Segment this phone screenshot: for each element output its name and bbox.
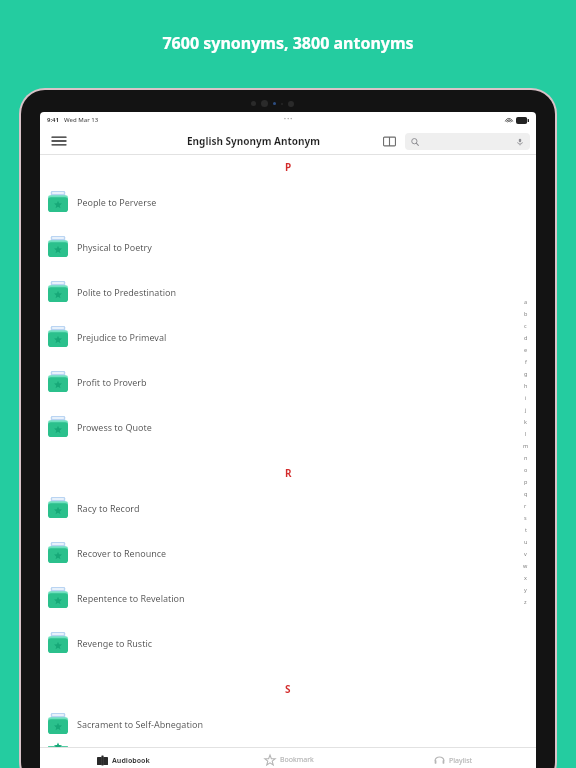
staticText: w <box>523 562 528 569</box>
button[interactable]: w <box>521 559 530 571</box>
staticText: Revenge to Rustic <box>77 637 153 649</box>
staticText: s <box>524 514 527 521</box>
staticText: j <box>525 406 527 413</box>
button[interactable]: d <box>521 331 530 343</box>
button[interactable]: Prejudice to Primeval <box>40 314 536 359</box>
staticText: R <box>285 466 292 480</box>
staticText: y <box>524 586 527 593</box>
staticText: Wed Mar 13 <box>64 116 99 124</box>
button[interactable]: People to Perverse <box>40 179 536 224</box>
staticText: People to Perverse <box>77 196 157 208</box>
button[interactable]: j <box>521 403 530 415</box>
staticText: h <box>524 382 528 389</box>
button[interactable]: Dictionary <box>379 131 399 151</box>
staticText: t <box>525 526 527 533</box>
staticText: o <box>524 466 528 473</box>
button[interactable]: u <box>521 535 530 547</box>
button[interactable]: c <box>521 319 530 331</box>
staticText: p <box>524 478 528 485</box>
button[interactable]: l <box>521 427 530 439</box>
button[interactable]: g <box>521 367 530 379</box>
button[interactable]: Polite to Predestination <box>40 269 536 314</box>
staticText: a <box>524 298 528 305</box>
button[interactable]: Racy to Record <box>40 485 536 530</box>
staticText: e <box>524 346 528 353</box>
button[interactable]: o <box>521 463 530 475</box>
staticText: v <box>524 550 527 557</box>
button[interactable]: f <box>521 355 530 367</box>
staticText: g <box>524 370 528 377</box>
button[interactable]: s <box>521 511 530 523</box>
button[interactable]: Repentence to Revelation <box>40 575 536 620</box>
button[interactable]: Sacrament to Self-Abnegation <box>40 701 536 746</box>
button[interactable]: k <box>521 415 530 427</box>
button[interactable]: e <box>521 343 530 355</box>
staticText: Polite to Predestination <box>77 286 176 298</box>
staticText: Profit to Proverb <box>77 376 147 388</box>
staticText: Sacrament to Self-Abnegation <box>77 718 203 730</box>
button[interactable]: Prowess to Quote <box>40 404 536 449</box>
button[interactable]: Physical to Poetry <box>40 224 536 269</box>
button[interactable]: Playlist <box>371 748 536 768</box>
button[interactable]: v <box>521 547 530 559</box>
staticText: Playlist <box>449 756 473 766</box>
button[interactable]: Recover to Renounce <box>40 530 536 575</box>
staticText: P <box>285 160 292 174</box>
button[interactable]: m <box>521 439 530 451</box>
button[interactable]: q <box>521 487 530 499</box>
button[interactable]: Bookmark <box>206 748 371 768</box>
button[interactable]: t <box>521 523 530 535</box>
staticText: b <box>524 310 528 317</box>
staticText: English Synonym Antonym <box>187 134 321 148</box>
button[interactable]: x <box>521 571 530 583</box>
button[interactable]: Revenge to Rustic <box>40 620 536 665</box>
button[interactable]: i <box>521 391 530 403</box>
staticText: l <box>525 430 527 437</box>
staticText: Racy to Record <box>77 502 140 514</box>
staticText: S <box>285 682 291 696</box>
button[interactable]: a <box>521 295 530 307</box>
staticText: Recover to Renounce <box>77 547 167 559</box>
staticText: 9:41 <box>47 116 59 124</box>
staticText: z <box>524 598 527 605</box>
button[interactable]: n <box>521 451 530 463</box>
staticText: m <box>523 442 529 449</box>
button[interactable]: p <box>521 475 530 487</box>
button[interactable]: z <box>521 595 530 607</box>
staticText: Prejudice to Primeval <box>77 331 167 343</box>
staticText: i <box>525 394 527 401</box>
staticText: k <box>524 418 527 425</box>
button[interactable]: h <box>521 379 530 391</box>
button[interactable]: b <box>521 307 530 319</box>
staticText: x <box>524 574 527 581</box>
staticText: n <box>524 454 528 461</box>
staticText: d <box>524 334 528 341</box>
staticText: q <box>524 490 528 497</box>
button[interactable]: Profit to Proverb <box>40 359 536 404</box>
button[interactable]: Menu <box>48 130 70 152</box>
staticText: Bookmark <box>280 755 314 765</box>
staticText: Repentence to Revelation <box>77 592 185 604</box>
staticText: r <box>524 502 527 509</box>
button[interactable]: Search <box>405 133 530 150</box>
staticText: • • • <box>284 116 293 123</box>
staticText: Physical to Poetry <box>77 241 152 253</box>
staticText: Prowess to Quote <box>77 421 152 433</box>
staticText: Audiobook <box>112 756 150 766</box>
staticText: f <box>525 358 527 365</box>
button[interactable]: Audiobook <box>40 748 206 768</box>
staticText: u <box>524 538 528 545</box>
button[interactable]: r <box>521 499 530 511</box>
staticText: c <box>524 322 527 329</box>
staticText: 7600 synonyms, 3800 antonyms <box>0 32 576 54</box>
button[interactable]: Self to Shatter <box>40 746 536 747</box>
button[interactable]: y <box>521 583 530 595</box>
